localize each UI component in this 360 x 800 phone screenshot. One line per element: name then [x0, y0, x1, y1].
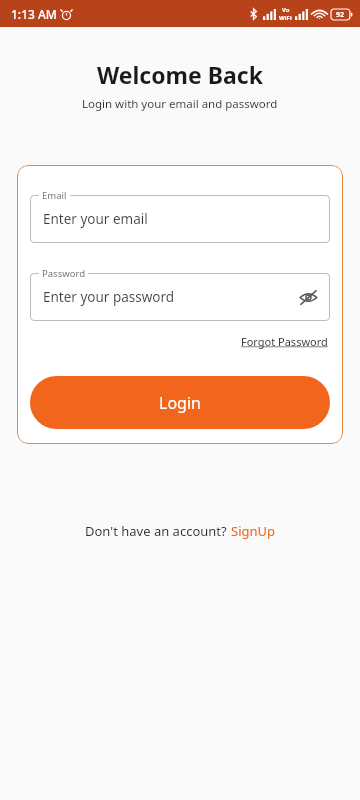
button[interactable]: Login — [30, 376, 330, 429]
button[interactable]: Toggle password visibility — [295, 284, 321, 310]
staticText: Email — [42, 189, 67, 202]
staticText: Forgot Password — [241, 334, 328, 349]
staticText: Don't have an account? — [85, 522, 231, 540]
staticText: 92 — [336, 10, 345, 20]
staticText: 1:13 AM — [11, 6, 57, 22]
staticText: SignUp — [231, 522, 276, 540]
staticText: Password — [42, 267, 85, 280]
staticText: Login with your email and password — [82, 96, 278, 112]
button[interactable]: SignUp — [231, 522, 276, 540]
staticText: WiFi — [279, 14, 292, 22]
staticText: Enter your password — [43, 288, 175, 306]
staticText: Enter your email — [43, 210, 148, 228]
button[interactable]: Enter your email — [30, 195, 330, 243]
button[interactable]: Enter your password — [30, 273, 330, 321]
staticText: Welcome Back — [97, 59, 263, 90]
staticText: Login — [159, 392, 201, 414]
button[interactable]: Forgot Password — [239, 331, 330, 352]
staticText: Vo — [282, 6, 290, 14]
